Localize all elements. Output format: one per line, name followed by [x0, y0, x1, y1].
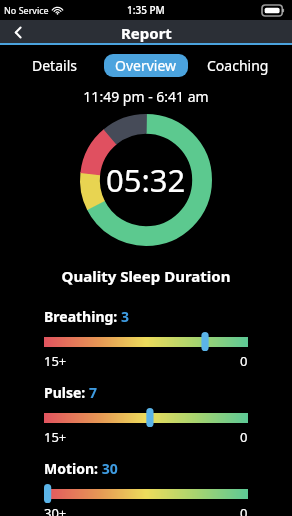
- button[interactable]: Overview: [104, 54, 188, 77]
- button[interactable]: [44, 332, 248, 351]
- staticText: 05:32: [106, 159, 186, 201]
- staticText: 1:35 PM: [127, 3, 165, 17]
- staticText: 0: [240, 428, 248, 446]
- button[interactable]: [44, 484, 248, 503]
- staticText: Pulse: 7: [44, 383, 97, 402]
- staticText: 0: [240, 352, 248, 370]
- staticText: Report: [121, 23, 172, 43]
- staticText: Overview: [115, 56, 177, 75]
- staticText: Breathing: 3: [44, 307, 129, 326]
- staticText: 15+: [44, 352, 67, 370]
- staticText: Coaching: [207, 56, 269, 75]
- button[interactable]: [44, 408, 248, 427]
- staticText: Motion: 30: [44, 459, 118, 478]
- staticText: 0: [240, 504, 248, 516]
- button[interactable]: Details: [21, 54, 88, 77]
- staticText: 30+: [44, 504, 67, 516]
- button[interactable]: Back: [0, 20, 36, 45]
- staticText: Quality Sleep Duration: [0, 266, 292, 286]
- button[interactable]: Coaching: [196, 54, 280, 77]
- staticText: 15+: [44, 428, 67, 446]
- staticText: No Service: [4, 4, 49, 16]
- staticText: Details: [32, 56, 77, 75]
- staticText: 11:49 pm - 6:41 am: [0, 87, 292, 106]
